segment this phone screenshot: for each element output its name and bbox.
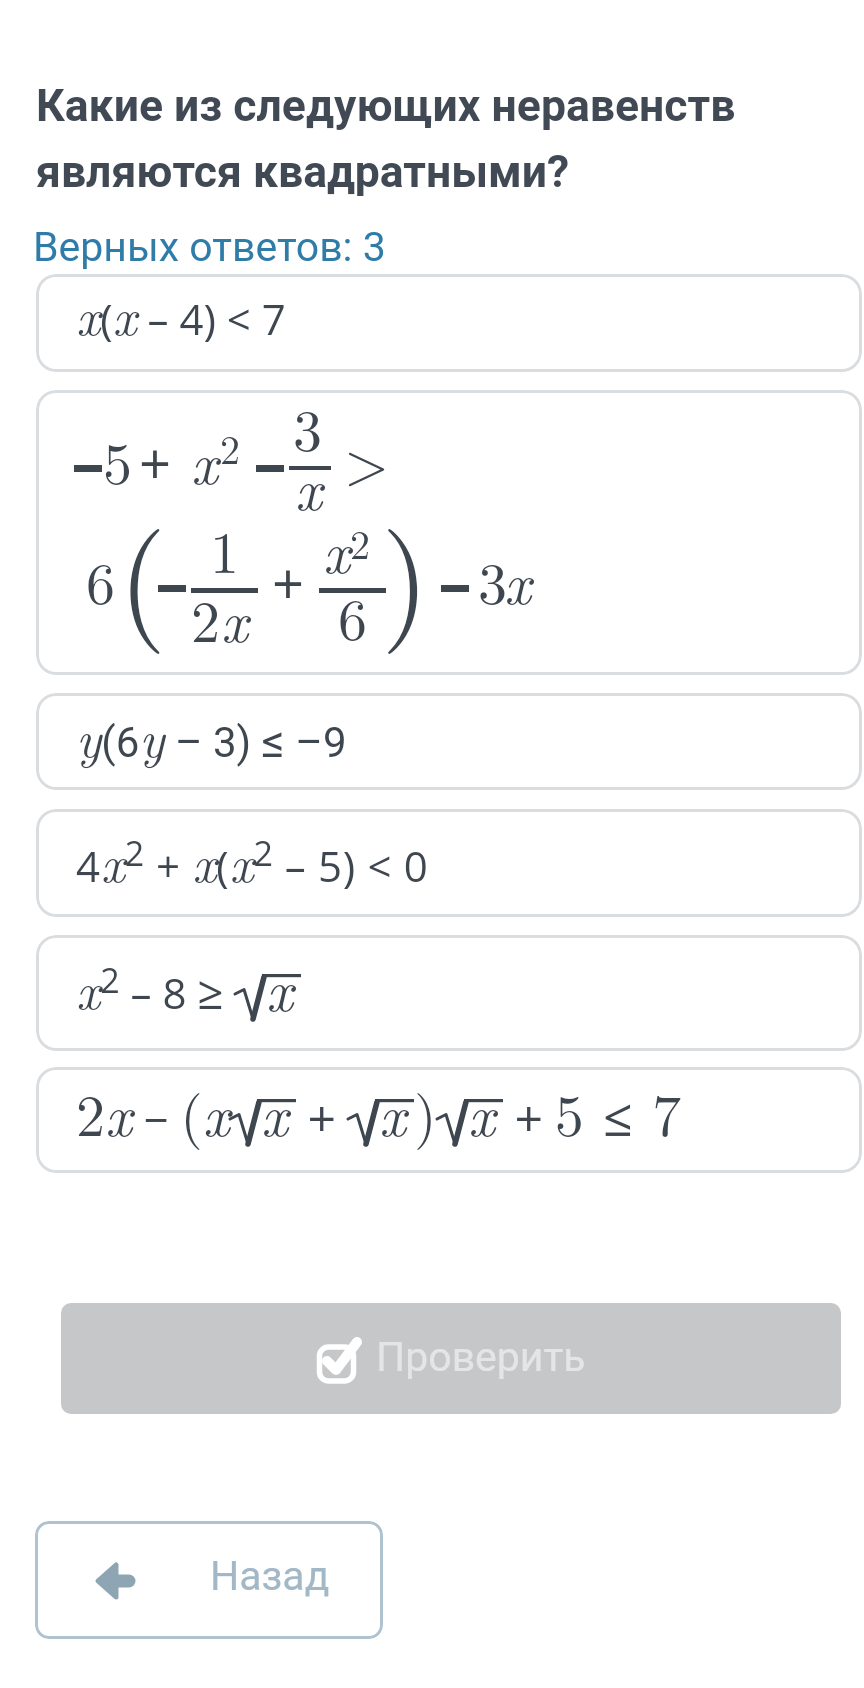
staticText: Проверить — [376, 1333, 586, 1381]
staticText: x(x – 4) < 7 — [76, 276, 286, 350]
staticText: 2 — [220, 419, 240, 476]
staticText: Верных ответов: 3 — [33, 223, 386, 271]
staticText: + 5 ≤ 7 — [503, 1071, 682, 1153]
staticText: > — [344, 419, 390, 501]
button[interactable]: Назад — [35, 1521, 383, 1639]
staticText: x — [261, 1071, 288, 1153]
button[interactable]: 5 — [36, 390, 862, 675]
staticText: 2 — [191, 577, 221, 659]
staticText: + — [272, 544, 305, 620]
staticText: x2 – 8 ≥ — [76, 950, 235, 1024]
staticText: x — [379, 1071, 406, 1153]
button[interactable]: Проверить — [61, 1303, 841, 1414]
button[interactable]: 2x − (x — [36, 1067, 862, 1173]
staticText: ) — [414, 1071, 437, 1153]
staticText: 3 — [478, 539, 508, 621]
staticText: y(6y – 3) ≤ –9 — [76, 698, 347, 772]
staticText: x — [295, 445, 322, 527]
staticText: 1 — [210, 508, 240, 590]
staticText: 4x2 + x(x2 – 5) < 0 — [76, 823, 429, 897]
staticText: x — [468, 1071, 495, 1153]
staticText: 6 — [86, 539, 116, 621]
button[interactable]: x(x – 4) < 7 — [36, 274, 862, 372]
staticText: 2 — [350, 514, 370, 571]
staticText: x — [504, 539, 531, 621]
staticText: 2x − (x — [76, 1071, 230, 1153]
staticText: 6 — [338, 575, 368, 657]
staticText: ) — [381, 482, 430, 659]
staticText: x — [191, 419, 218, 501]
staticText: ( — [118, 482, 167, 659]
staticText: Назад — [210, 1552, 330, 1600]
staticText: x — [266, 946, 293, 1028]
staticText: + — [139, 424, 172, 500]
staticText: 5 — [103, 419, 133, 501]
button[interactable]: y(6y – 3) ≤ –9 — [36, 693, 862, 790]
button[interactable]: 4x2 + x(x2 – 5) < 0 — [36, 809, 862, 917]
staticText: x — [323, 508, 350, 590]
staticText: 3 — [293, 390, 323, 468]
button[interactable]: x2 – 8 ≥ — [36, 935, 862, 1051]
staticText: x — [221, 577, 248, 659]
staticText: + — [296, 1071, 348, 1153]
staticText: Какие из следующих неравенств являются к… — [36, 80, 736, 198]
